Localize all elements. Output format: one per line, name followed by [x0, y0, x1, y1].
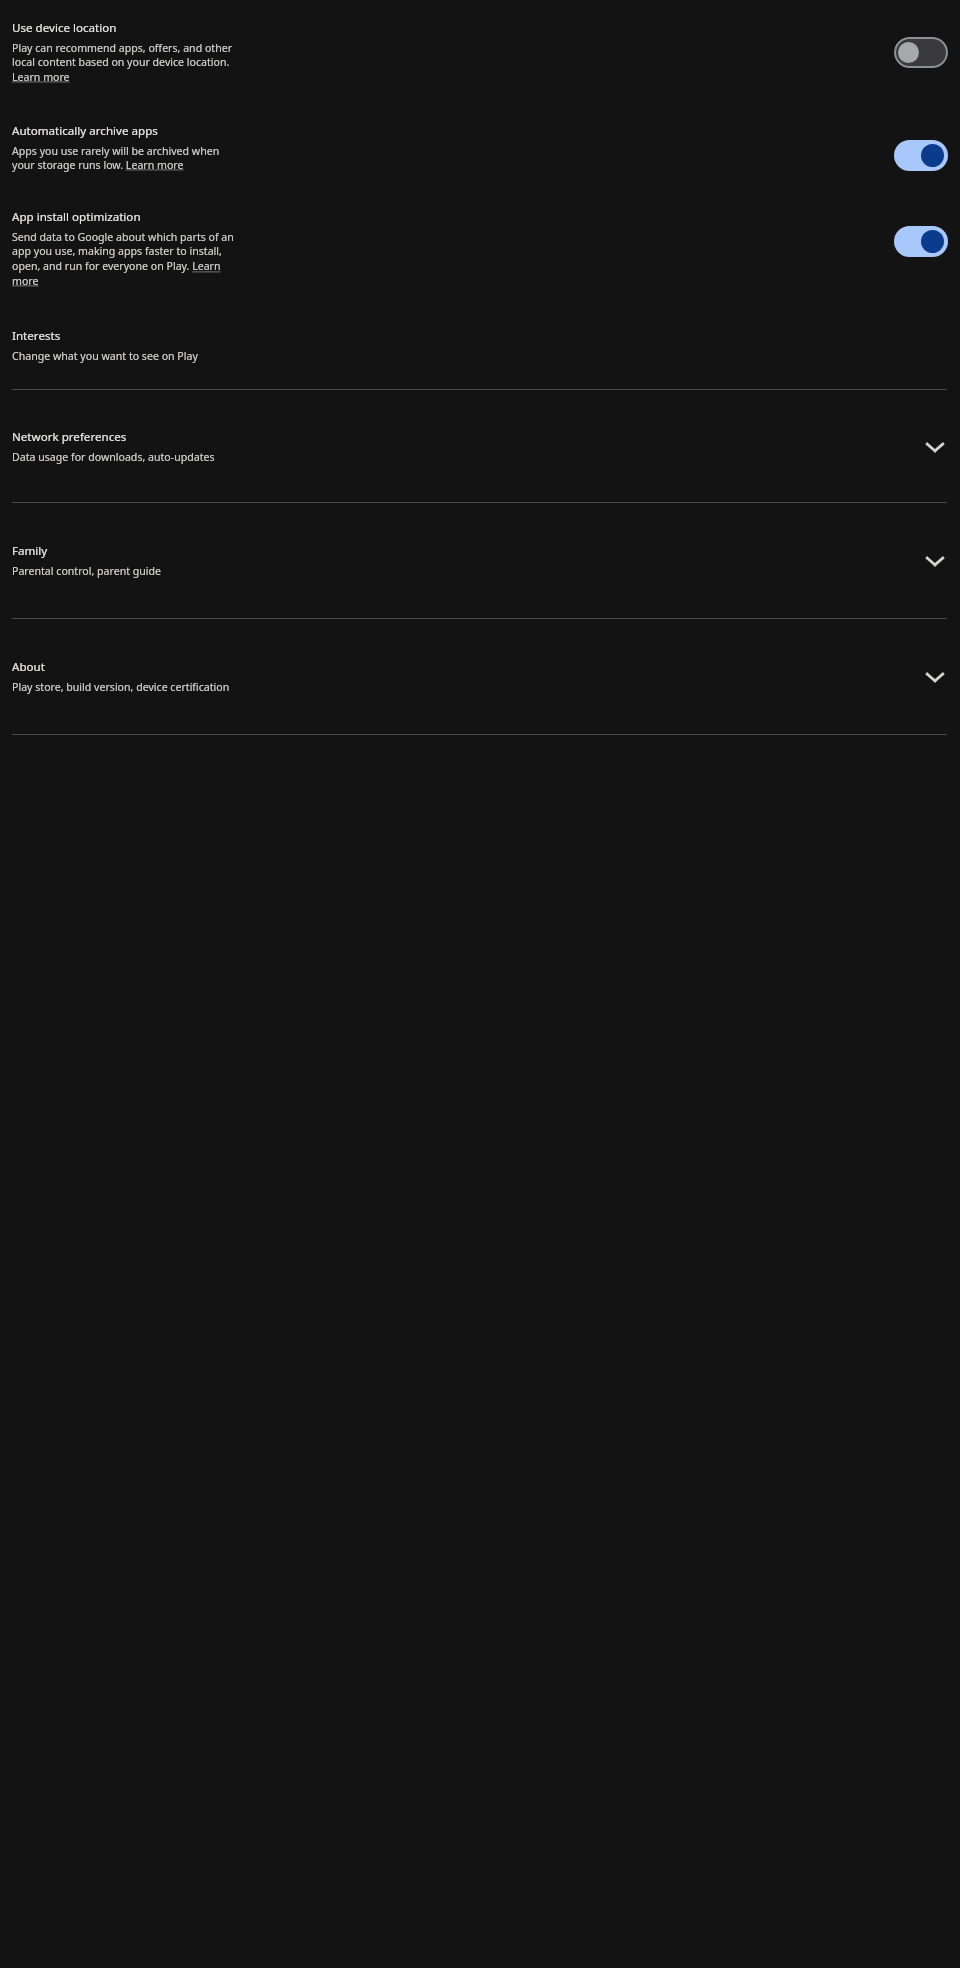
staticText: Play can recommend apps, offers, and oth… — [12, 41, 244, 84]
staticText: Parental control, parent guide — [12, 564, 162, 578]
staticText: About — [12, 659, 45, 675]
staticText: Family — [12, 543, 48, 559]
button[interactable]: About — [0, 659, 960, 694]
staticText: Network preferences — [12, 429, 127, 445]
button[interactable]: Network preferences — [0, 429, 960, 464]
button[interactable]: Expand About — [922, 664, 948, 690]
staticText: Play store, build version, device certif… — [12, 680, 230, 694]
button[interactable]: Family — [0, 543, 960, 578]
button[interactable]: Interests — [0, 328, 960, 363]
staticText: Send data to Google about which parts of… — [12, 230, 246, 288]
staticText: Interests — [12, 328, 61, 344]
button[interactable]: App install optimization — [894, 226, 948, 257]
button[interactable]: Automatically archive apps — [894, 140, 948, 171]
button[interactable]: Expand Family — [922, 548, 948, 574]
staticText: Change what you want to see on Play — [12, 349, 198, 363]
staticText: Use device location — [12, 20, 117, 36]
staticText: Apps you use rarely will be archived whe… — [12, 144, 244, 172]
button[interactable]: Use device location — [0, 20, 960, 84]
staticText: Data usage for downloads, auto-updates — [12, 450, 215, 464]
button[interactable]: Automatically archive apps — [0, 123, 960, 172]
staticText: App install optimization — [12, 209, 141, 225]
button[interactable]: Expand Network preferences — [922, 434, 948, 460]
button[interactable]: Use device location — [894, 37, 948, 68]
staticText: Automatically archive apps — [12, 123, 158, 139]
button[interactable]: App install optimization — [0, 209, 960, 288]
